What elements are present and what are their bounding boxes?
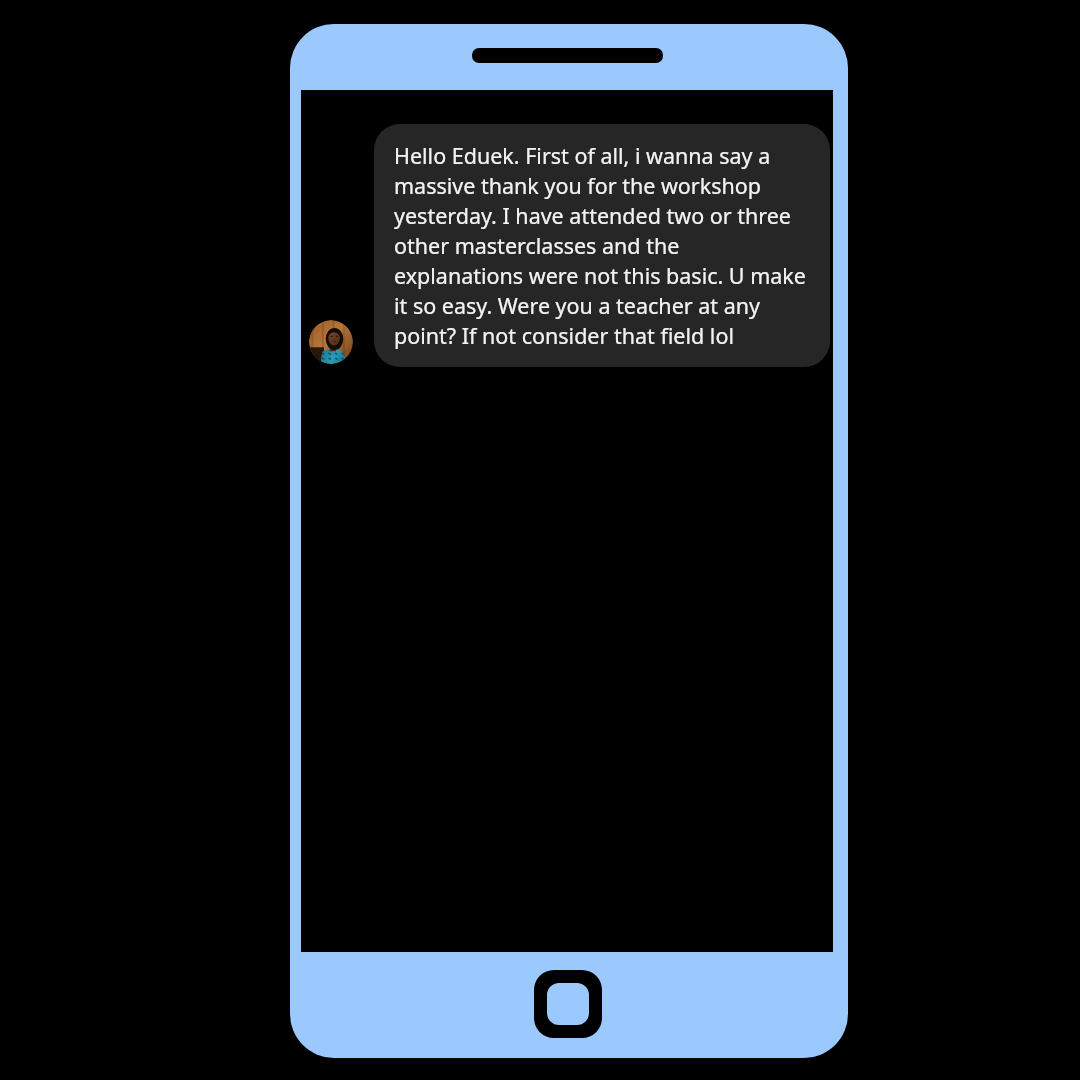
- button[interactable]: Sender profile photo: [309, 320, 353, 364]
- button[interactable]: Hello Eduek. First of all, i wanna say a…: [374, 124, 830, 367]
- button[interactable]: Home: [534, 970, 602, 1038]
- staticText: Hello Eduek. First of all, i wanna say a…: [394, 141, 812, 350]
